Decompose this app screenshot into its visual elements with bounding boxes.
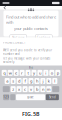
button[interactable]: Send bbox=[46, 94, 59, 100]
button[interactable]: b bbox=[34, 86, 39, 92]
staticText: PHONE CONTACT bbox=[3, 41, 25, 44]
button[interactable]: n bbox=[40, 86, 45, 92]
staticText: Continue bbox=[37, 36, 51, 39]
button[interactable]: p bbox=[55, 70, 60, 76]
staticText: l bbox=[54, 78, 55, 84]
button[interactable]: Emoji bbox=[10, 94, 15, 100]
staticText: e bbox=[15, 70, 17, 75]
button[interactable]: t bbox=[25, 70, 31, 76]
staticText: j bbox=[42, 78, 43, 84]
staticText: your public contacts bbox=[14, 26, 48, 31]
staticText: f bbox=[24, 78, 25, 84]
staticText: let you message with your contacts secur… bbox=[3, 57, 50, 64]
staticText: g bbox=[30, 78, 32, 84]
staticText: y bbox=[33, 70, 35, 75]
staticText: i bbox=[45, 70, 46, 75]
button[interactable]: 123 bbox=[3, 94, 9, 100]
button[interactable]: Continue bbox=[35, 35, 52, 41]
staticText: v bbox=[30, 86, 32, 92]
button[interactable]: j bbox=[40, 78, 45, 84]
staticText: c bbox=[24, 86, 26, 92]
button[interactable]: Not now bbox=[10, 35, 27, 41]
button[interactable]: f bbox=[22, 78, 28, 84]
button[interactable]: d bbox=[16, 78, 22, 84]
staticText: space bbox=[27, 95, 34, 99]
button[interactable]: Shift bbox=[3, 86, 10, 92]
staticText: o bbox=[51, 70, 53, 75]
staticText: The bbox=[28, 66, 33, 69]
button[interactable]: z bbox=[11, 86, 16, 92]
staticText: Find out who to add and share with bbox=[6, 14, 56, 25]
staticText: 123 bbox=[3, 95, 9, 99]
staticText: q bbox=[3, 70, 5, 75]
button[interactable]: v bbox=[28, 86, 33, 92]
button[interactable]: w bbox=[8, 70, 13, 76]
staticText: p bbox=[57, 70, 59, 75]
staticText: n bbox=[42, 86, 44, 92]
button[interactable]: a bbox=[5, 78, 10, 84]
button[interactable]: Delete bbox=[52, 86, 59, 92]
staticText: Send bbox=[49, 95, 56, 99]
button[interactable]: x bbox=[16, 86, 22, 92]
button[interactable]: space bbox=[16, 94, 45, 100]
button[interactable]: h bbox=[34, 78, 39, 84]
staticText: h bbox=[36, 78, 38, 84]
button[interactable]: y bbox=[31, 70, 36, 76]
staticText: a bbox=[6, 78, 8, 84]
button[interactable]: c bbox=[22, 86, 28, 92]
button[interactable]: o bbox=[49, 70, 54, 76]
button[interactable]: e bbox=[14, 70, 19, 76]
button[interactable]: s bbox=[11, 78, 16, 84]
staticText: u bbox=[39, 70, 41, 75]
staticText: d bbox=[18, 78, 20, 84]
staticText: x bbox=[18, 86, 20, 92]
button[interactable]: r bbox=[19, 70, 25, 76]
button[interactable]: u bbox=[37, 70, 42, 76]
staticText: b bbox=[36, 86, 38, 92]
button[interactable]: m bbox=[46, 86, 51, 92]
button[interactable]: q bbox=[2, 70, 7, 76]
staticText: Not now bbox=[12, 36, 24, 39]
staticText: FIG. 5B bbox=[22, 110, 40, 118]
staticText: r bbox=[21, 70, 23, 75]
button[interactable]: g bbox=[28, 78, 33, 84]
button[interactable]: l bbox=[52, 78, 57, 84]
staticText: w bbox=[9, 70, 12, 75]
staticText: z bbox=[12, 86, 14, 92]
staticText: m bbox=[47, 86, 51, 92]
button[interactable]: i bbox=[43, 70, 48, 76]
staticText: k bbox=[48, 78, 50, 84]
button[interactable]: Back bbox=[1, 6, 8, 9]
staticText: s bbox=[12, 78, 14, 84]
button[interactable]: k bbox=[46, 78, 51, 84]
staticText: We'll send you a code to verify your num… bbox=[3, 48, 52, 56]
